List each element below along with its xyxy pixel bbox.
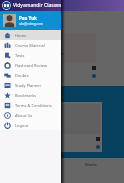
button[interactable]: Pao Yuk — [0, 11, 61, 30]
button[interactable]: Logout — [0, 120, 61, 130]
button[interactable]: Terms & Conditions — [0, 100, 61, 110]
button[interactable]: Study Planner — [0, 80, 61, 90]
staticText: Vidyamandir Classes — [13, 2, 62, 9]
button[interactable]: DOWNLOAD — [5, 143, 100, 151]
button[interactable]: Bookmarks — [0, 90, 61, 100]
staticText: Terms & Conditions — [15, 103, 52, 108]
staticText: Flashcard Review — [15, 63, 48, 68]
staticText: Home — [15, 33, 27, 38]
button[interactable]: Exercise — [3, 102, 102, 152]
staticText: Logout — [15, 123, 29, 128]
staticText: Submit by 10 — [11, 74, 30, 78]
staticText: Marks — [85, 162, 97, 167]
button[interactable]: About Us — [0, 110, 61, 120]
button[interactable]: Home — [0, 30, 61, 40]
staticText: Course Material — [15, 43, 45, 48]
button[interactable]: 1 Question — [5, 135, 100, 143]
staticText: About Us — [15, 113, 33, 118]
staticText: Pao Yuk — [19, 15, 37, 21]
button[interactable]: Submit by 10 — [5, 72, 96, 80]
staticText: Quadratic sample exercise — [40, 48, 64, 56]
button[interactable]: Mandatory — [3, 31, 98, 82]
button[interactable]: Course Material — [0, 40, 61, 50]
staticText: Doubts — [15, 73, 29, 78]
button[interactable]: Open navigation drawer — [2, 1, 11, 10]
button[interactable]: Doubts — [0, 70, 61, 80]
button[interactable]: Flashcard Review — [0, 60, 61, 70]
staticText: Subject & Class — [5, 96, 28, 100]
staticText: Study Planner — [15, 83, 42, 88]
staticText: 1 Question — [11, 66, 27, 70]
staticText: abc@vdmg.com — [19, 22, 43, 26]
staticText: Bookmarks — [15, 93, 37, 98]
button[interactable]: Marks — [85, 162, 120, 169]
staticText: Mandatory — [43, 41, 62, 46]
button[interactable]: Tests — [0, 50, 61, 60]
button[interactable]: 1 Question — [5, 64, 96, 72]
staticText: Tests — [15, 53, 25, 58]
